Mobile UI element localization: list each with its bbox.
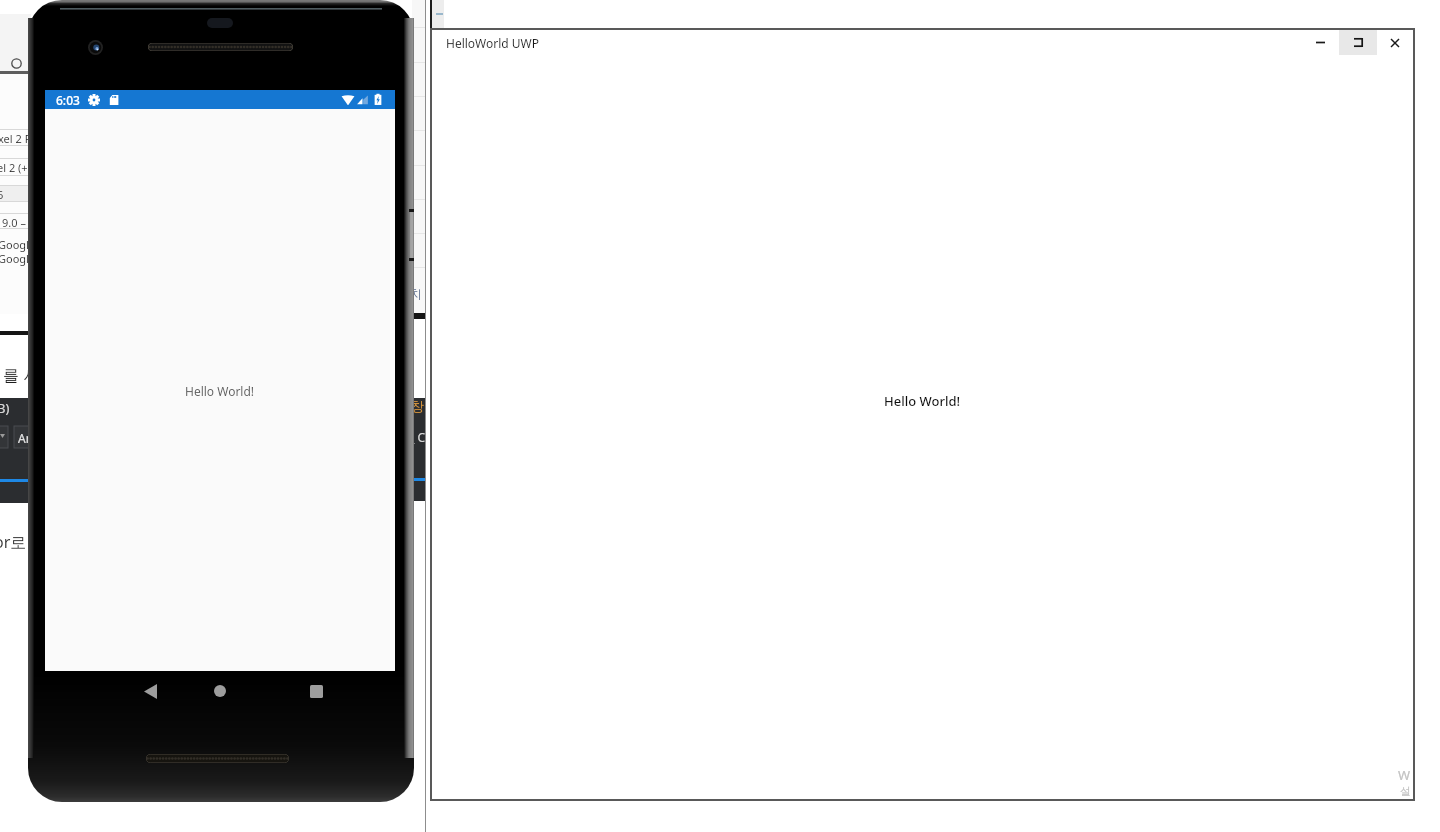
staticText: Google <box>0 237 36 252</box>
staticText: 6 <box>0 187 4 202</box>
staticText: 설 <box>1400 784 1411 798</box>
staticText: or로 <box>0 531 27 553</box>
staticText: xel 2 P <box>0 131 32 146</box>
button[interactable]: Maximize <box>1339 30 1377 55</box>
button[interactable]: Close <box>1376 30 1414 55</box>
staticText: 6:03 <box>56 92 80 108</box>
staticText: _ C <box>409 429 426 445</box>
staticText: HelloWorld UWP <box>446 35 540 51</box>
staticText: Hello World! <box>884 392 961 410</box>
staticText: Hello World! <box>185 383 255 399</box>
staticText: W <box>1398 766 1411 784</box>
staticText: B) <box>0 399 10 417</box>
button[interactable]: Recent apps <box>288 670 345 712</box>
staticText: 9.0 – <box>2 215 26 230</box>
staticText: 창 <box>411 398 424 414</box>
staticText: 치 <box>410 286 422 301</box>
staticText: An <box>18 430 34 446</box>
staticText: Google <box>0 251 36 266</box>
staticText: 를 사 <box>3 364 40 386</box>
button[interactable]: Minimize <box>1301 30 1339 55</box>
button[interactable]: Back <box>122 670 178 712</box>
staticText: el 2 (+ <box>0 160 28 175</box>
button[interactable]: Home <box>191 670 248 712</box>
